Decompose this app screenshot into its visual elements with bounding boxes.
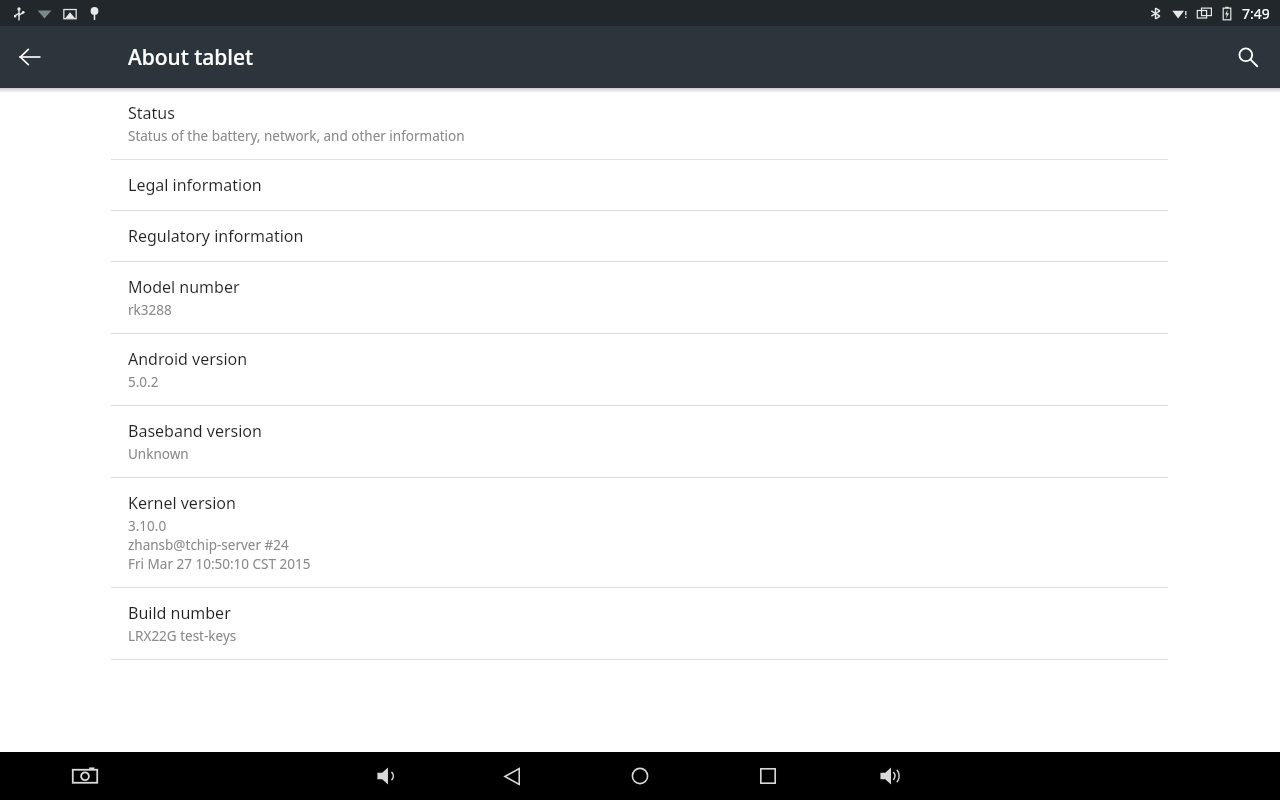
button[interactable]: Back <box>489 753 535 799</box>
staticText: About tablet <box>128 43 254 72</box>
button[interactable]: Baseband version <box>0 406 1280 477</box>
button[interactable]: Legal information <box>0 160 1280 210</box>
staticText: Build number <box>128 602 231 624</box>
staticText: Kernel version <box>128 492 236 514</box>
button[interactable]: Build number <box>0 588 1280 659</box>
button[interactable]: Back <box>6 33 54 81</box>
staticText: LRX22G test-keys <box>128 627 237 645</box>
button[interactable]: Regulatory information <box>0 211 1280 261</box>
staticText: Fri Mar 27 10:50:10 CST 2015 <box>128 555 311 573</box>
button[interactable]: Volume down <box>364 753 410 799</box>
button[interactable]: Screenshot <box>62 753 108 799</box>
staticText: Status <box>128 102 175 124</box>
staticText: 5.0.2 <box>128 373 159 391</box>
staticText: rk3288 <box>128 301 172 319</box>
staticText: Unknown <box>128 445 189 463</box>
staticText: Android version <box>128 348 248 370</box>
staticText: Model number <box>128 276 240 298</box>
button[interactable]: Status <box>0 88 1280 159</box>
button[interactable]: Kernel version <box>0 478 1280 587</box>
button[interactable]: Home <box>617 753 663 799</box>
staticText: Status of the battery, network, and othe… <box>128 127 465 145</box>
staticText: 3.10.0 <box>128 517 167 535</box>
button[interactable]: Recent apps <box>745 753 791 799</box>
button[interactable]: Volume up <box>868 753 914 799</box>
button[interactable]: Search <box>1224 33 1272 81</box>
staticText: Baseband version <box>128 420 262 442</box>
staticText: 7:49 <box>1242 4 1270 23</box>
staticText: zhansb@tchip-server #24 <box>128 536 289 554</box>
button[interactable]: Model number <box>0 262 1280 333</box>
staticText: Legal information <box>128 174 262 196</box>
button[interactable]: Android version <box>0 334 1280 405</box>
staticText: Regulatory information <box>128 225 304 247</box>
